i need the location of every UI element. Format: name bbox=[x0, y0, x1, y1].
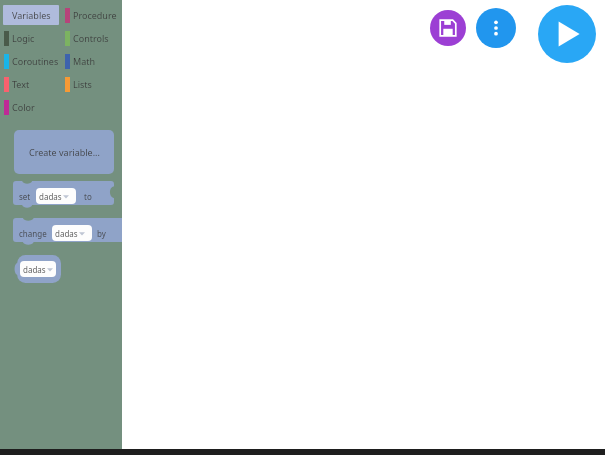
staticText: Logic bbox=[12, 32, 35, 44]
button[interactable]: change bbox=[13, 218, 122, 248]
button[interactable]: set bbox=[13, 181, 114, 211]
staticText: by bbox=[97, 228, 106, 239]
staticText: change bbox=[19, 228, 47, 239]
button[interactable]: Run bbox=[538, 5, 596, 63]
button[interactable]: Variables bbox=[3, 5, 59, 25]
button[interactable]: dadas bbox=[13, 255, 61, 283]
button[interactable]: Coroutines bbox=[3, 51, 59, 71]
staticText: Lists bbox=[73, 78, 92, 90]
staticText: Create variable... bbox=[29, 146, 100, 158]
staticText: to bbox=[84, 191, 92, 202]
staticText: set bbox=[19, 191, 31, 202]
staticText: Text bbox=[12, 78, 30, 90]
button[interactable]: Color bbox=[3, 97, 59, 117]
staticText: dadas bbox=[39, 191, 62, 202]
staticText: Variables bbox=[12, 9, 51, 21]
button[interactable]: Save bbox=[430, 10, 466, 46]
button[interactable]: Controls bbox=[64, 28, 120, 48]
staticText: Procedure bbox=[73, 9, 117, 21]
staticText: Coroutines bbox=[12, 55, 59, 67]
staticText: Math bbox=[73, 55, 96, 67]
button[interactable]: Text bbox=[3, 74, 59, 94]
staticText: Color bbox=[12, 101, 35, 113]
button[interactable]: Math bbox=[64, 51, 120, 71]
button[interactable]: Lists bbox=[64, 74, 120, 94]
button[interactable]: Create variable... bbox=[14, 130, 114, 174]
staticText: Controls bbox=[73, 32, 109, 44]
staticText: dadas bbox=[23, 264, 46, 275]
button[interactable]: Procedure bbox=[64, 5, 120, 25]
staticText: dadas bbox=[55, 228, 78, 239]
button[interactable]: More options bbox=[476, 8, 516, 48]
button[interactable]: Logic bbox=[3, 28, 59, 48]
